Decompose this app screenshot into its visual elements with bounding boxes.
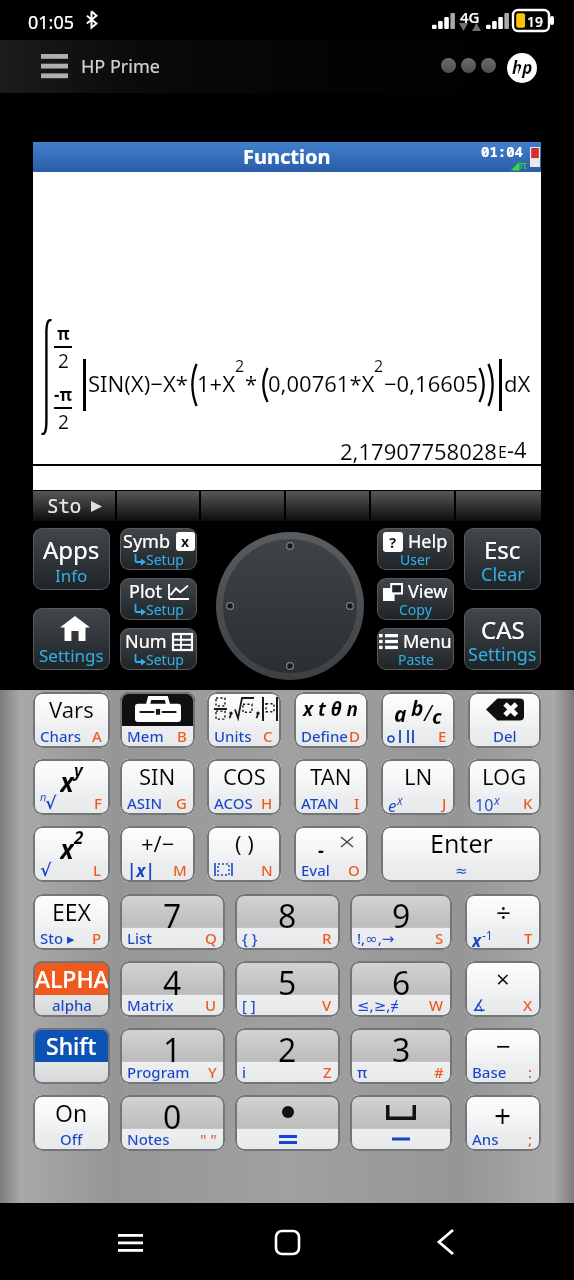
button[interactable]: Esc <box>464 528 541 590</box>
button[interactable]: key <box>33 826 110 882</box>
button[interactable]: Soft key 5 <box>371 491 454 521</box>
staticText: Base <box>472 1062 507 1082</box>
staticText: Mem <box>127 726 164 746</box>
staticText: 2,17907758028 <box>340 436 497 466</box>
button[interactable]: EEX <box>33 894 110 950</box>
staticText: COS <box>223 761 266 791</box>
staticText: LOG <box>482 761 527 791</box>
staticText: { } <box>242 928 258 948</box>
staticText: ATAN <box>301 793 339 813</box>
staticText: O <box>348 860 360 880</box>
staticText: Symb <box>123 529 170 554</box>
button[interactable]: Settings <box>33 608 110 670</box>
button[interactable]: key <box>235 1095 340 1151</box>
button[interactable]: 6 <box>350 961 452 1017</box>
staticText: TAN <box>310 761 352 791</box>
staticText: 3 <box>392 1028 411 1062</box>
button[interactable]: key <box>381 692 455 748</box>
button[interactable]: Num <box>120 628 197 670</box>
button[interactable]: Recent apps <box>102 1214 158 1270</box>
button[interactable]: key <box>33 759 110 815</box>
button[interactable]: Menu <box>377 628 454 670</box>
button[interactable]: ( ) <box>207 826 281 882</box>
button[interactable]: 8 <box>235 894 340 950</box>
staticText: F <box>94 793 102 813</box>
button[interactable]: − <box>465 1028 541 1084</box>
button[interactable]: Define <box>294 692 368 748</box>
staticText: Setup <box>146 550 184 569</box>
button[interactable]: SIN <box>120 759 195 815</box>
button[interactable]: TAN <box>294 759 368 815</box>
staticText: × <box>496 962 510 995</box>
button[interactable]: Del <box>468 692 541 748</box>
button[interactable]: ? <box>377 528 454 570</box>
staticText: dX <box>504 368 531 398</box>
button[interactable]: × <box>465 961 541 1017</box>
button[interactable]: LN <box>381 759 455 815</box>
button[interactable]: +/− <box>120 826 195 882</box>
button[interactable]: Eval <box>294 826 368 882</box>
staticText: ACOS <box>214 793 253 813</box>
staticText: ◢π <box>511 157 527 172</box>
button[interactable]: Vars <box>33 692 110 748</box>
staticText: ÷ <box>496 894 511 928</box>
staticText: ≤,≥,≠ <box>357 995 399 1015</box>
staticText: 2 <box>374 355 384 377</box>
button[interactable]: 9 <box>350 894 452 950</box>
button[interactable]: View <box>377 578 454 620</box>
button[interactable]: 2 <box>235 1028 340 1084</box>
button[interactable]: 7 <box>120 894 225 950</box>
staticText: π <box>57 322 70 345</box>
button[interactable]: Open navigation menu <box>34 46 74 86</box>
button[interactable]: Symb <box>120 528 197 570</box>
staticText: B <box>177 726 187 746</box>
button[interactable]: + <box>465 1095 541 1151</box>
staticText: -π <box>54 383 73 406</box>
button[interactable]: Plot <box>120 578 197 620</box>
button[interactable]: COS <box>207 759 281 815</box>
staticText: x <box>181 532 190 551</box>
button[interactable]: Mem <box>120 692 195 748</box>
staticText: R <box>322 928 332 948</box>
button[interactable]: On <box>33 1095 110 1151</box>
button[interactable]: Soft key 2 <box>117 491 199 521</box>
staticText: Help <box>408 529 448 554</box>
staticText: 9 <box>392 894 411 928</box>
staticText: alpha <box>52 995 92 1015</box>
button[interactable]: Units <box>207 692 281 748</box>
button[interactable]: HP logo <box>507 53 537 83</box>
staticText: List <box>127 928 153 948</box>
button[interactable]: 0 <box>120 1095 225 1151</box>
staticText: Vars <box>49 694 94 724</box>
button[interactable]: ÷ <box>465 894 541 950</box>
staticText: 19 <box>527 12 544 31</box>
button[interactable]: Soft key 3 <box>201 491 284 521</box>
staticText: 4G <box>460 7 480 27</box>
button[interactable]: Direction pad <box>216 532 364 680</box>
staticText: L <box>93 860 102 880</box>
staticText: P <box>92 928 102 948</box>
button[interactable]: ALPHA <box>33 961 110 1017</box>
button[interactable]: Enter <box>381 826 541 882</box>
button[interactable]: 3 <box>350 1028 452 1084</box>
button[interactable]: key <box>350 1095 452 1151</box>
button[interactable]: 5 <box>235 961 340 1017</box>
button[interactable]: Soft key 4 <box>286 491 369 521</box>
button[interactable]: Sto <box>33 491 115 521</box>
button[interactable]: CAS <box>464 608 541 670</box>
staticText: A <box>92 726 102 746</box>
button[interactable]: Soft key 6 <box>456 491 541 521</box>
button[interactable]: Shift <box>33 1028 110 1084</box>
button[interactable]: Home <box>259 1214 315 1270</box>
button[interactable]: Apps <box>33 528 110 590</box>
button[interactable]: 4 <box>120 961 225 1017</box>
staticText: Settings <box>39 644 104 667</box>
staticText: Sto <box>47 493 82 519</box>
staticText: V <box>322 995 332 1015</box>
button[interactable]: LOG <box>468 759 541 815</box>
button[interactable]: Back <box>417 1214 473 1270</box>
staticText: H <box>261 793 273 813</box>
staticText: + <box>494 1095 512 1129</box>
staticText: LN <box>404 761 433 791</box>
button[interactable]: 1 <box>120 1028 225 1084</box>
